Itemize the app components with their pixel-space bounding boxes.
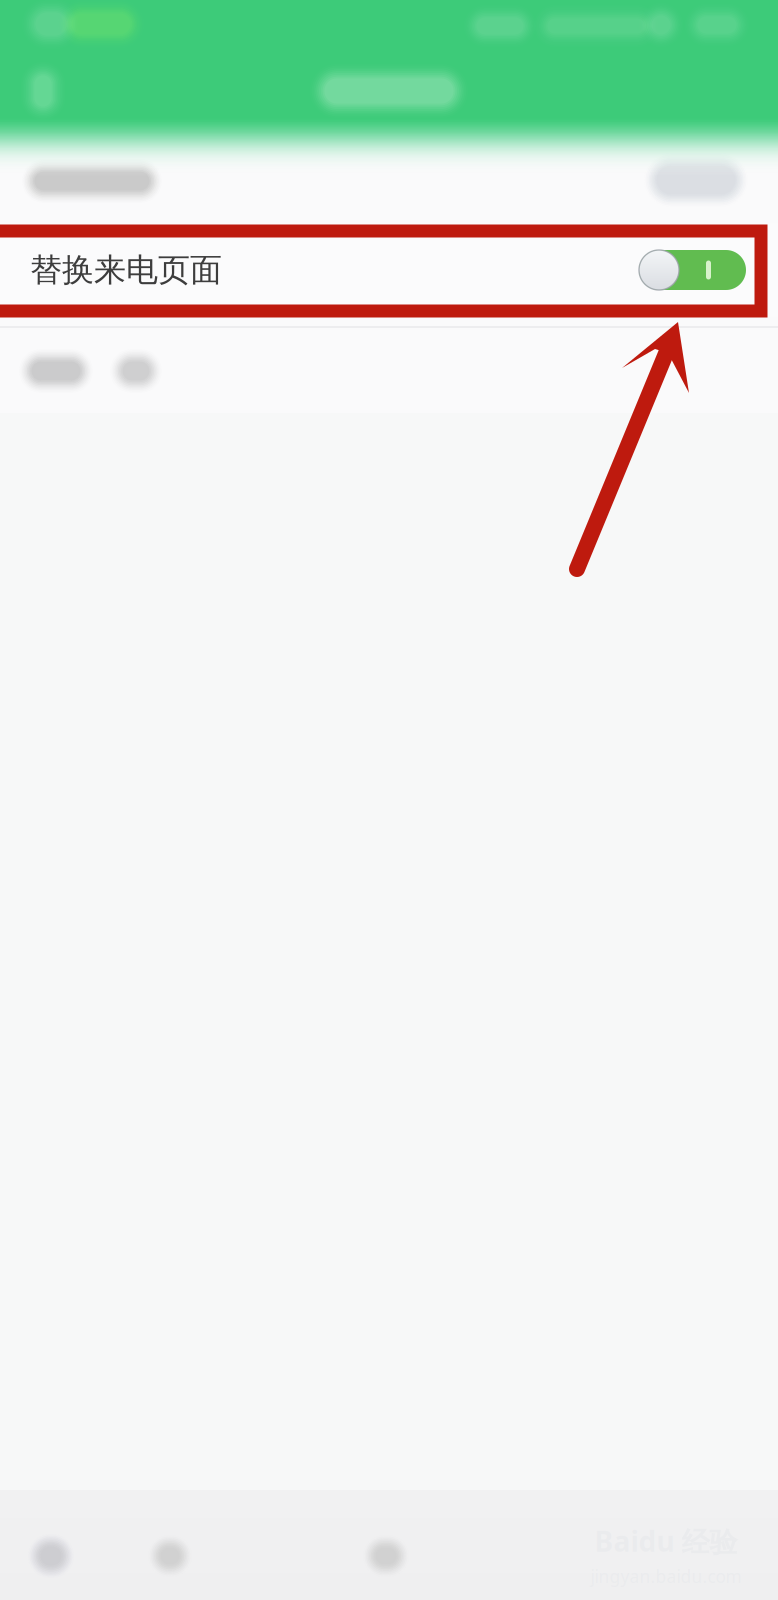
button[interactable]: 设置项 [0,130,778,224]
button[interactable]: 最近任务 [331,1506,441,1600]
button[interactable]: 替换来电页面 [0,223,778,316]
button[interactable]: 设置项 [0,324,778,416]
button[interactable]: 返回 [0,1506,106,1600]
button[interactable]: 主页 [115,1506,225,1600]
staticText: 替换来电页面 [30,250,222,290]
button[interactable]: 返回 [0,48,86,134]
